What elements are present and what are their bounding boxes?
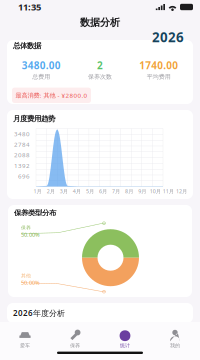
staticText: 1月 [33, 188, 41, 195]
staticText: 3480 [14, 130, 30, 138]
staticText: 月度费用趋势 [13, 114, 55, 124]
staticText: 4月 [73, 188, 81, 195]
staticText: 50.00% [21, 231, 40, 238]
staticText: 其他 [21, 273, 31, 279]
staticText: 9月 [138, 188, 146, 195]
staticText: 爱车 [20, 342, 30, 349]
staticText: 统计 [120, 342, 130, 349]
staticText: 1392 [14, 161, 30, 170]
staticText: 总体数据 [13, 41, 41, 50]
staticText: 2026 [152, 28, 184, 46]
staticText: 2088 [14, 151, 30, 159]
staticText: 数据分析 [80, 16, 120, 29]
staticText: 10月 [150, 188, 161, 195]
staticText: 2784 [14, 140, 30, 149]
staticText: 2 [97, 58, 103, 72]
staticText: 8月 [125, 188, 133, 195]
button[interactable]: 保养 [50, 327, 100, 351]
staticText: 3月 [60, 188, 68, 195]
staticText: 12月 [176, 188, 187, 195]
staticText: 最高消费: 其他 - ¥2800.0 [15, 91, 87, 99]
staticText: 3480.00 [22, 58, 61, 72]
staticText: 保养类型分布 [14, 208, 56, 218]
staticText: 保养 [70, 342, 80, 349]
staticText: 1740.00 [139, 58, 178, 72]
staticText: 我的 [170, 342, 180, 349]
staticText: 总费用 [32, 73, 50, 81]
staticText: 5月 [86, 188, 94, 195]
button[interactable]: 爱车 [0, 327, 50, 351]
staticText: 保养 [21, 225, 31, 231]
staticText: 2月 [47, 188, 55, 195]
staticText: 696 [18, 172, 30, 180]
staticText: 11月 [163, 188, 174, 195]
button[interactable]: 我的 [150, 327, 200, 351]
staticText: 保养次数 [88, 73, 112, 81]
staticText: 11:35 [18, 1, 41, 13]
staticText: 7月 [112, 188, 120, 195]
staticText: 6月 [99, 188, 107, 195]
button[interactable]: 统计 [100, 327, 150, 351]
staticText: 平均费用 [147, 73, 171, 81]
staticText: 50.00% [21, 279, 40, 286]
staticText: 2026年度分析 [13, 308, 65, 318]
